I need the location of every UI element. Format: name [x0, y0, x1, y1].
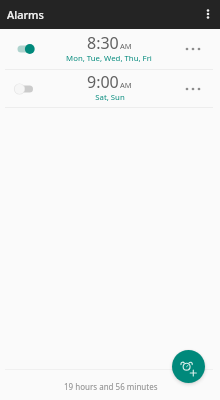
staticText: Mon, Tue, Wed, Thu, Fri — [66, 53, 152, 64]
staticText: Sat, Sun — [95, 92, 125, 103]
staticText: AM — [120, 80, 132, 90]
button[interactable]: Alarm on — [0, 29, 220, 69]
staticText: AM — [120, 41, 132, 51]
button[interactable]: Expand alarm — [180, 36, 206, 62]
button[interactable]: Alarm on — [10, 39, 38, 59]
staticText: Alarms — [7, 7, 44, 22]
button[interactable]: Alarm off — [0, 70, 220, 107]
button[interactable]: More options — [198, 4, 218, 24]
staticText: 8:30 — [87, 32, 119, 54]
button[interactable]: Alarm off — [10, 79, 38, 99]
staticText: 19 hours and 56 minutes — [64, 381, 158, 392]
button[interactable]: Expand alarm — [180, 76, 206, 102]
staticText: 9:00 — [87, 71, 119, 93]
button[interactable]: Add alarm — [172, 350, 205, 383]
